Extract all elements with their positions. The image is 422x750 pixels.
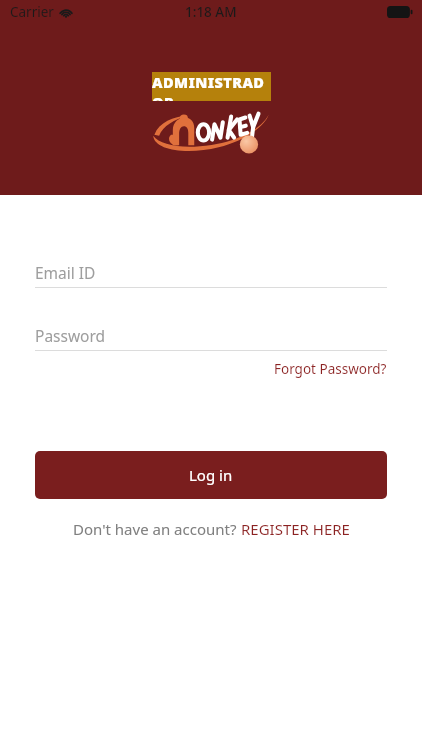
staticText: Don't have an account? [73,519,241,539]
staticText: Log in [189,465,233,485]
staticText: Password [35,325,106,346]
button[interactable]: Forgot Password? [274,357,387,381]
staticText: Forgot Password? [274,360,387,378]
button[interactable]: Email ID [35,257,387,288]
button[interactable]: Log in [35,451,387,499]
staticText: Email ID [35,262,96,283]
staticText: ADMINISTRADOR [152,72,271,101]
button[interactable]: REGISTER HERE [241,519,350,539]
staticText: REGISTER HERE [241,519,350,539]
button[interactable]: Password [35,320,387,351]
staticText: Carrier [10,3,54,21]
staticText: 1:18 AM [185,3,237,21]
